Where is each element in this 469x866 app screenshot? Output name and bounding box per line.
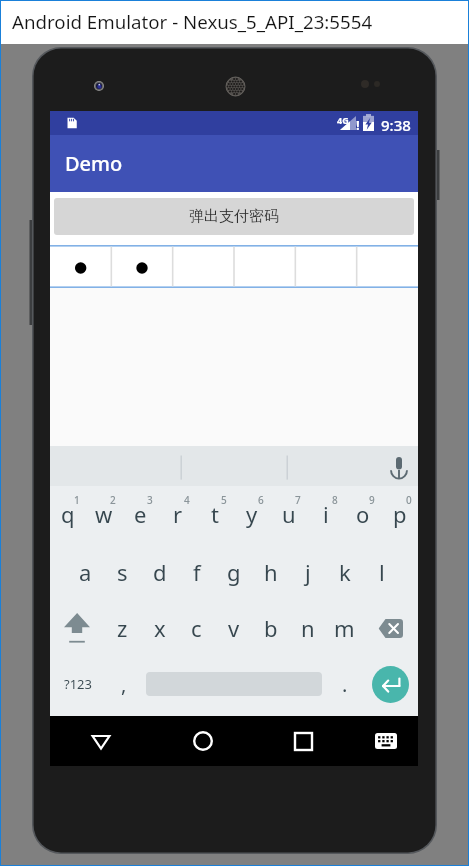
staticText: x <box>154 613 166 643</box>
staticText: Android Emulator - Nexus_5_API_23:5554 <box>12 9 373 34</box>
button[interactable]: 6 <box>233 488 270 544</box>
staticText: 9:38 <box>381 115 411 135</box>
button[interactable]: 5 <box>196 488 233 544</box>
staticText: c <box>191 613 202 643</box>
button[interactable]: s <box>104 544 141 600</box>
staticText: 1 <box>74 493 80 507</box>
staticText: p <box>393 499 407 529</box>
staticText: 7 <box>295 493 301 507</box>
staticText: f <box>193 557 201 587</box>
staticText: r <box>173 499 183 529</box>
staticText: g <box>227 557 241 587</box>
staticText: t <box>211 499 219 529</box>
staticText: 6 <box>258 493 264 507</box>
staticText: z <box>117 613 128 643</box>
staticText: 3 <box>147 493 153 507</box>
staticText: 弹出支付密码 <box>189 207 279 226</box>
staticText: q <box>61 499 75 529</box>
button[interactable]: 7 <box>270 488 307 544</box>
button[interactable]: Enter <box>363 656 418 712</box>
button[interactable]: Recents <box>253 716 354 766</box>
button[interactable]: ?123 <box>50 656 105 712</box>
staticText: d <box>153 557 167 587</box>
button[interactable]: Backspace <box>363 600 418 656</box>
button[interactable]: , <box>105 656 142 712</box>
button[interactable]: 8 <box>307 488 344 544</box>
staticText: a <box>79 557 92 587</box>
button[interactable]: Shift <box>50 600 104 656</box>
button[interactable]: g <box>215 544 252 600</box>
staticText: s <box>117 557 128 587</box>
staticText: 4G <box>337 114 349 126</box>
button[interactable]: Demo <box>50 135 418 192</box>
staticText: l <box>379 557 385 587</box>
staticText: n <box>301 613 315 643</box>
button[interactable]: 4 <box>159 488 196 544</box>
button[interactable]: l <box>363 544 400 600</box>
button[interactable]: 9 <box>344 488 381 544</box>
button[interactable]: Keyboard <box>354 716 418 766</box>
staticText: ?123 <box>64 675 92 693</box>
staticText: Demo <box>65 150 123 177</box>
button[interactable]: 弹出支付密码 <box>54 198 414 235</box>
staticText: 4 <box>184 493 190 507</box>
staticText: b <box>264 613 278 643</box>
staticText: 2 <box>110 493 116 507</box>
button[interactable]: . <box>326 656 363 712</box>
staticText: j <box>305 557 311 587</box>
staticText: , <box>121 671 127 698</box>
button[interactable]: b <box>252 600 289 656</box>
button[interactable]: 0 <box>381 488 418 544</box>
button[interactable]: Home <box>152 716 253 766</box>
staticText: e <box>134 499 147 529</box>
button[interactable]: h <box>252 544 289 600</box>
staticText: w <box>95 499 113 529</box>
staticText: 8 <box>332 493 338 507</box>
staticText: 9 <box>369 493 375 507</box>
staticText: ! <box>356 116 360 134</box>
button[interactable]: 1 <box>50 488 86 544</box>
button[interactable]: f <box>178 544 215 600</box>
staticText: i <box>323 499 329 529</box>
staticText: k <box>339 557 351 587</box>
staticText: h <box>264 557 278 587</box>
button[interactable]: j <box>289 544 326 600</box>
staticText: u <box>282 499 296 529</box>
button[interactable]: 2 <box>86 488 122 544</box>
button[interactable]: x <box>141 600 178 656</box>
staticText: o <box>356 499 370 529</box>
staticText: m <box>334 613 355 643</box>
staticText: 0 <box>406 493 412 507</box>
button[interactable]: 3 <box>122 488 159 544</box>
staticText: y <box>246 499 258 529</box>
button[interactable]: Space <box>142 656 326 712</box>
button[interactable]: a <box>67 544 104 600</box>
button[interactable]: k <box>326 544 363 600</box>
button[interactable]: m <box>326 600 363 656</box>
button[interactable]: c <box>178 600 215 656</box>
button[interactable]: d <box>141 544 178 600</box>
button[interactable]: v <box>215 600 252 656</box>
button[interactable]: n <box>289 600 326 656</box>
staticText: v <box>228 613 240 643</box>
staticText: 5 <box>221 493 227 507</box>
staticText: . <box>342 671 348 698</box>
button[interactable]: Back <box>50 716 152 766</box>
button[interactable]: z <box>104 600 141 656</box>
